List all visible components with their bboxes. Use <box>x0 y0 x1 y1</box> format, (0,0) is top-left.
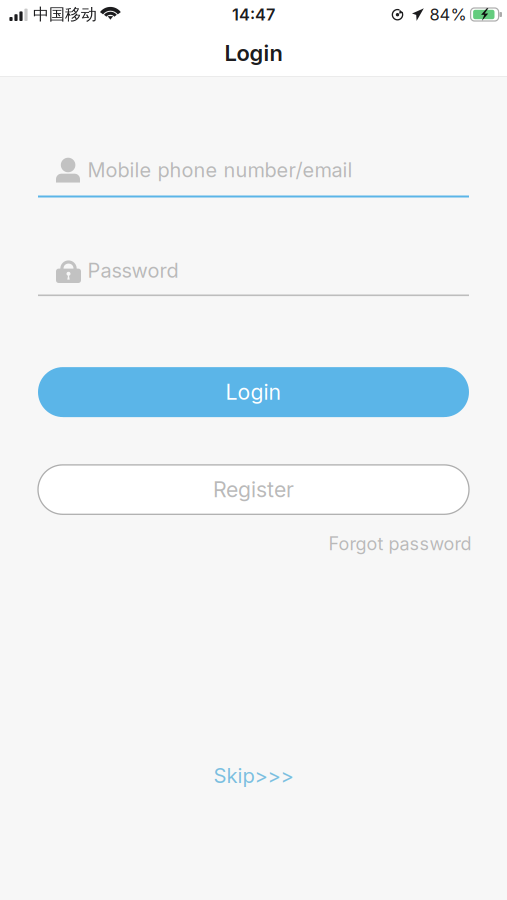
button[interactable]: Skip>>> <box>213 763 293 788</box>
button[interactable]: Login <box>38 367 469 417</box>
staticText: Skip>>> <box>213 763 293 788</box>
staticText: 84% <box>430 4 467 24</box>
staticText: Password <box>87 258 178 283</box>
staticText: 14:47 <box>232 5 275 24</box>
staticText: Login <box>224 40 282 66</box>
staticText: Login <box>225 379 281 405</box>
staticText: Mobile phone number/email <box>87 158 352 182</box>
staticText: 中国移动 <box>33 4 97 25</box>
staticText: Forgot password <box>328 533 471 555</box>
button[interactable]: Forgot password <box>328 533 471 555</box>
button[interactable]: Register <box>38 465 469 514</box>
staticText: Register <box>213 477 294 502</box>
